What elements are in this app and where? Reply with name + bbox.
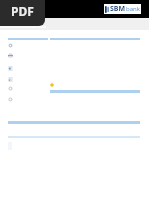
button[interactable]: Settings bbox=[5, 41, 16, 50]
button[interactable]: Help bbox=[5, 95, 16, 104]
staticText: bank bbox=[126, 5, 140, 13]
staticText: SBM bbox=[110, 4, 126, 14]
button[interactable]: Info bbox=[5, 84, 16, 93]
button[interactable]: Print bbox=[5, 51, 16, 60]
button[interactable]: PDF bbox=[0, 0, 45, 26]
button[interactable]: SBM bank logo bbox=[104, 4, 141, 14]
staticText: PDF bbox=[11, 3, 34, 19]
button[interactable]: Copy bbox=[5, 64, 16, 73]
button[interactable]: Page bbox=[5, 75, 16, 84]
